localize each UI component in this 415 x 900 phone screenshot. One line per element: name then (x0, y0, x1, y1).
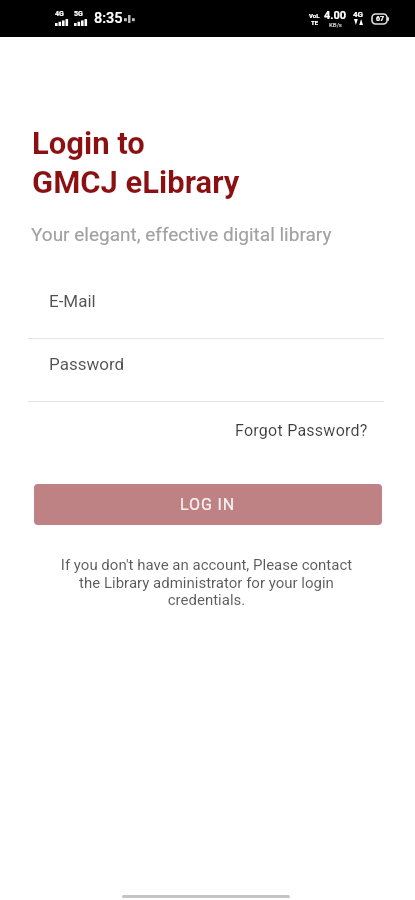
button[interactable]: E-Mail (28, 275, 384, 339)
button[interactable]: LOG IN (34, 484, 382, 525)
staticText: 4G (353, 10, 364, 19)
staticText: 8:35 (94, 10, 123, 27)
staticText: E-Mail (49, 291, 96, 311)
staticText: TE (311, 19, 319, 26)
staticText: 67 (376, 15, 385, 23)
staticText: Your elegant, effective digital library (31, 223, 332, 245)
staticText: LOG IN (180, 495, 236, 514)
staticText: 5G (74, 10, 83, 18)
staticText: 4G (55, 10, 64, 18)
other: Mobile data (353, 11, 365, 26)
staticText: KB/s (329, 21, 342, 28)
staticText: Login to (32, 125, 145, 161)
staticText: GMCJ eLibrary (32, 164, 240, 200)
staticText: Forgot Password? (235, 421, 368, 440)
staticText: If you don't have an account, Please con… (60, 556, 353, 608)
staticText: VoL (309, 12, 320, 19)
staticText: 4.00 (324, 9, 347, 22)
staticText: Password (49, 354, 125, 374)
button[interactable]: Forgot Password? (231, 417, 372, 444)
button[interactable]: Password (28, 339, 384, 402)
